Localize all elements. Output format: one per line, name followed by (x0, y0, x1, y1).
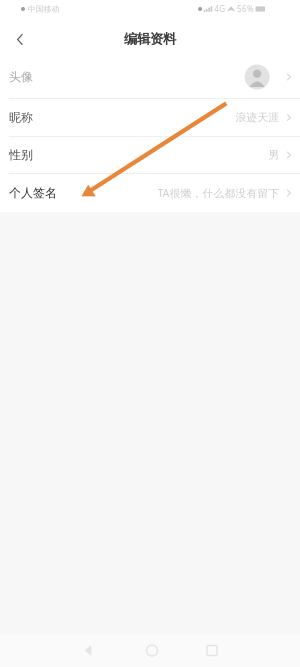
staticText: 浪迹天涯 (236, 111, 280, 124)
staticText: TA很懒，什么都没有留下 (158, 186, 280, 200)
staticText: 性别 (9, 148, 33, 162)
button[interactable]: 最近任务 (190, 634, 234, 666)
button[interactable]: 返回 (0, 18, 36, 56)
staticText: 编辑资料 (124, 31, 176, 47)
staticText: 56% (237, 4, 254, 14)
button[interactable]: 头像 (0, 56, 300, 98)
button[interactable]: 性别 (0, 137, 300, 173)
button[interactable]: 昵称 (0, 99, 300, 136)
staticText: 男 (269, 148, 280, 161)
staticText: 个人签名 (9, 186, 57, 200)
button[interactable]: 个人签名 (0, 174, 300, 212)
button[interactable]: 返回 (66, 634, 110, 666)
staticText: 昵称 (9, 110, 33, 125)
button[interactable]: 主页 (130, 634, 174, 666)
staticText: 中国移动 (27, 4, 59, 14)
staticText: 头像 (9, 70, 33, 84)
staticText: 4G (214, 4, 225, 14)
